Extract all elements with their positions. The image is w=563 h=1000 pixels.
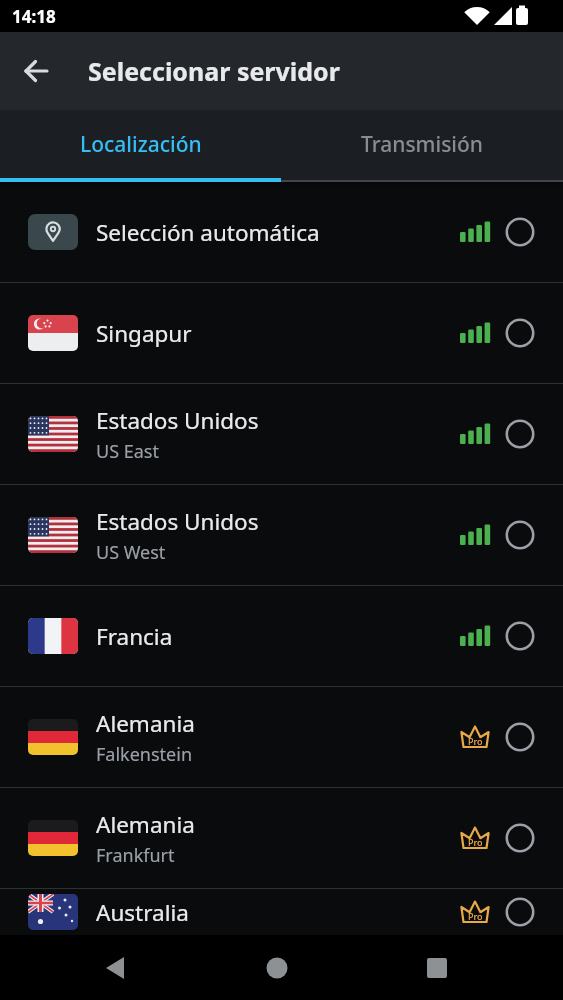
staticText: Pro <box>468 836 483 848</box>
button[interactable] <box>413 944 461 992</box>
staticText: Alemania <box>96 708 195 739</box>
staticText: Falkenstein <box>96 742 193 767</box>
button[interactable] <box>253 944 301 992</box>
staticText: US East <box>96 439 159 464</box>
staticText: Australia <box>96 897 189 928</box>
staticText: Alemania <box>96 809 195 840</box>
staticText: Localización <box>80 130 202 159</box>
button[interactable]: Estados Unidos <box>0 485 563 585</box>
staticText: Seleccionar servidor <box>88 54 340 88</box>
button[interactable]: Alemania <box>0 788 563 888</box>
staticText: Transmisión <box>361 130 484 159</box>
button[interactable]: Estados Unidos <box>0 384 563 484</box>
staticText: Estados Unidos <box>96 506 259 537</box>
staticText: US West <box>96 540 166 565</box>
staticText: 14:18 <box>12 5 56 28</box>
staticText: Selección automática <box>96 217 320 248</box>
button[interactable]: Selección automática <box>0 182 563 282</box>
staticText: Francia <box>96 621 173 652</box>
button[interactable]: Alemania <box>0 687 563 787</box>
button[interactable]: Francia <box>0 586 563 686</box>
button[interactable]: Transmisión <box>281 110 563 178</box>
staticText: Pro <box>468 735 483 747</box>
staticText: Pro <box>468 910 483 922</box>
staticText: Frankfurt <box>96 843 175 868</box>
button[interactable] <box>0 32 72 110</box>
staticText: Estados Unidos <box>96 405 259 436</box>
staticText: Singapur <box>96 318 192 349</box>
button[interactable]: Australia <box>0 889 563 935</box>
button[interactable] <box>92 944 140 992</box>
button[interactable]: Singapur <box>0 283 563 383</box>
button[interactable]: Localización <box>0 110 281 178</box>
